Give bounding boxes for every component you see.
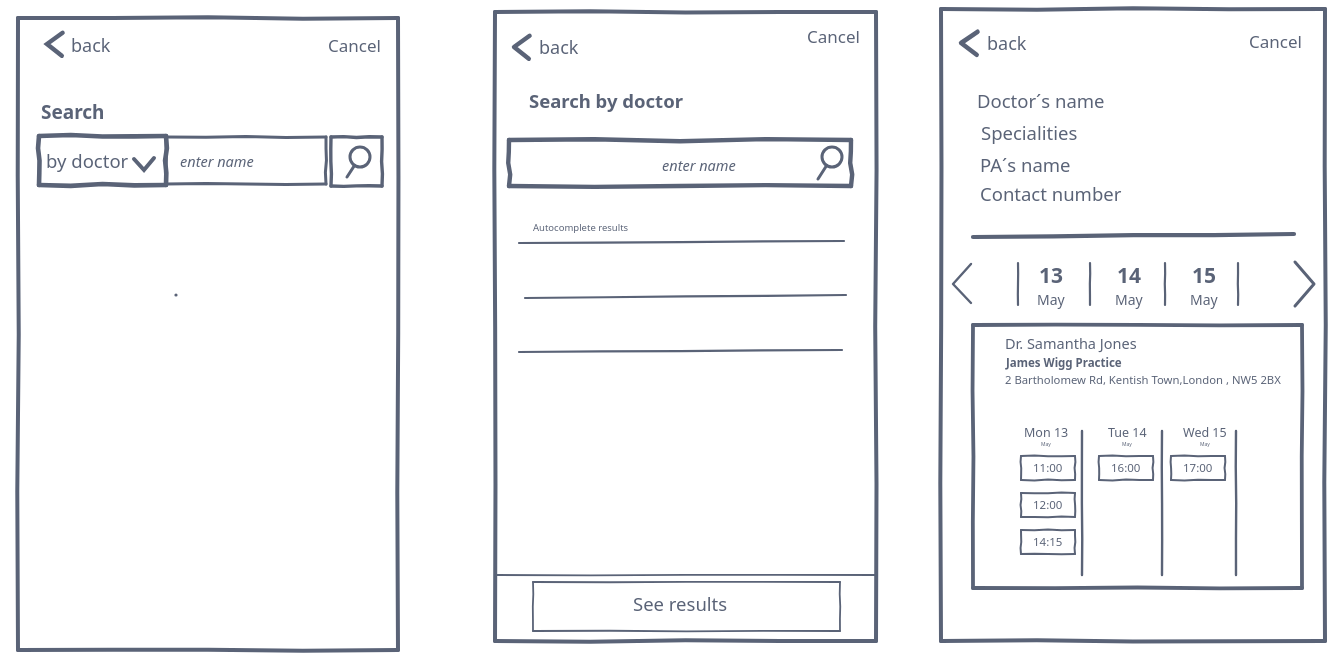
- button[interactable]: Cancel: [1243, 24, 1308, 59]
- button[interactable]: [519, 225, 844, 263]
- staticText: Wed 15: [1183, 424, 1227, 441]
- staticText: May: [1122, 441, 1132, 448]
- staticText: Mon 13: [1024, 424, 1069, 441]
- button[interactable]: 12:00: [1020, 492, 1076, 518]
- staticText: James Wigg Practice: [1006, 355, 1122, 371]
- staticText: May: [1041, 441, 1051, 448]
- button[interactable]: [519, 265, 844, 303]
- button[interactable]: 14:15: [1020, 529, 1076, 555]
- staticText: Search by doctor: [529, 88, 683, 113]
- button[interactable]: enter name: [506, 137, 854, 189]
- staticText: enter name: [180, 151, 254, 171]
- staticText: May: [1115, 290, 1143, 309]
- button[interactable]: Search: [331, 137, 382, 186]
- button[interactable]: 17:00: [1170, 455, 1226, 481]
- button[interactable]: 11:00: [1020, 455, 1076, 481]
- button[interactable]: [519, 318, 844, 356]
- staticText: Specialities: [981, 120, 1078, 145]
- button[interactable]: 13: [1025, 261, 1077, 309]
- button[interactable]: Cancel: [322, 28, 387, 63]
- staticText: Contact number: [980, 181, 1122, 206]
- staticText: Tue 14: [1108, 424, 1147, 441]
- staticText: 2 Bartholomew Rd, Kentish Town,London , …: [1005, 372, 1281, 387]
- staticText: by doctor: [46, 148, 129, 173]
- staticText: 13: [1039, 261, 1064, 290]
- button[interactable]: Search: [811, 143, 849, 181]
- staticText: May: [1200, 441, 1210, 448]
- button[interactable]: back: [951, 21, 1035, 65]
- staticText: Cancel: [328, 34, 381, 57]
- button[interactable]: Cancel: [801, 19, 866, 54]
- button[interactable]: See results: [532, 581, 841, 632]
- staticText: 16:00: [1111, 460, 1141, 476]
- staticText: PA´s name: [980, 152, 1071, 177]
- button[interactable]: 15: [1178, 261, 1230, 309]
- button[interactable]: 14: [1103, 261, 1155, 309]
- staticText: back: [71, 33, 111, 58]
- staticText: Cancel: [1249, 30, 1302, 53]
- staticText: 12:00: [1033, 497, 1063, 513]
- button[interactable]: back: [504, 25, 587, 69]
- staticText: back: [539, 35, 579, 60]
- button[interactable]: back: [37, 22, 119, 66]
- staticText: 15: [1192, 261, 1217, 290]
- staticText: Cancel: [807, 25, 860, 48]
- staticText: 14:15: [1033, 534, 1063, 550]
- staticText: 14: [1117, 261, 1142, 290]
- staticText: Dr. Samantha Jones: [1005, 333, 1137, 353]
- staticText: 17:00: [1183, 460, 1213, 476]
- staticText: See results: [633, 591, 728, 616]
- staticText: Search: [41, 99, 105, 125]
- staticText: 11:00: [1033, 460, 1063, 476]
- staticText: Doctor´s name: [977, 88, 1105, 113]
- staticText: May: [1190, 290, 1218, 309]
- button[interactable]: by doctor: [39, 136, 166, 185]
- staticText: enter name: [662, 155, 736, 175]
- button[interactable]: 16:00: [1098, 455, 1154, 481]
- staticText: Autocomplete results: [533, 221, 629, 234]
- button[interactable]: Previous days: [946, 258, 982, 310]
- staticText: back: [987, 31, 1027, 56]
- staticText: May: [1037, 290, 1065, 309]
- button[interactable]: enter name: [166, 137, 326, 184]
- button[interactable]: Next days: [1288, 258, 1324, 310]
